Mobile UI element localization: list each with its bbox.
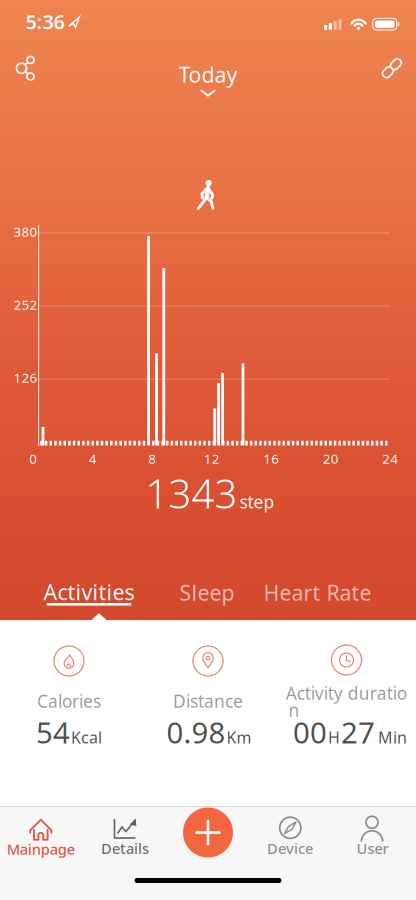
staticText: 0 xyxy=(29,450,37,467)
staticText: 20 xyxy=(323,450,339,467)
staticText: 27 xyxy=(341,712,375,751)
button[interactable]: Today xyxy=(178,60,237,96)
staticText: 24 xyxy=(382,450,398,467)
staticText: Kcal xyxy=(71,726,102,748)
staticText: 12 xyxy=(204,450,220,467)
staticText: 380 xyxy=(13,223,37,240)
staticText: Details xyxy=(101,839,149,858)
staticText: 16 xyxy=(263,450,279,467)
button[interactable]: Sleep xyxy=(179,578,234,607)
staticText: Heart Rate xyxy=(263,578,371,607)
button[interactable]: Mainpage xyxy=(0,810,83,866)
staticText: 252 xyxy=(13,296,37,313)
staticText: 0.98 xyxy=(166,712,225,751)
staticText: Activities xyxy=(43,578,134,606)
staticText: User xyxy=(356,839,388,858)
staticText: 8 xyxy=(148,450,156,467)
button[interactable]: Details xyxy=(83,810,167,866)
staticText: 00 xyxy=(293,712,327,751)
staticText: 54 xyxy=(36,712,70,751)
staticText: Today xyxy=(178,60,237,89)
staticText: Calories xyxy=(37,689,101,712)
button[interactable]: Add xyxy=(183,807,233,857)
staticText: Min xyxy=(378,726,407,748)
button[interactable]: Heart Rate xyxy=(263,578,371,607)
staticText: H xyxy=(328,726,340,748)
staticText: Km xyxy=(226,726,251,748)
staticText: Activity duratio xyxy=(286,681,407,704)
button[interactable]: Activities xyxy=(43,578,134,606)
staticText: step xyxy=(239,490,274,513)
staticText: n xyxy=(288,698,299,721)
staticText: Mainpage xyxy=(7,839,75,859)
button[interactable]: Link xyxy=(378,54,406,82)
staticText: 1343 xyxy=(145,466,237,519)
staticText: 5:36 xyxy=(25,8,64,35)
button[interactable]: User xyxy=(330,810,414,866)
staticText: 126 xyxy=(13,369,37,386)
staticText: Sleep xyxy=(179,578,234,607)
staticText: 4 xyxy=(89,450,97,467)
staticText: Distance xyxy=(173,689,243,712)
button[interactable]: Share xyxy=(12,53,38,83)
button[interactable]: Device xyxy=(248,810,332,866)
staticText: Device xyxy=(267,839,313,858)
